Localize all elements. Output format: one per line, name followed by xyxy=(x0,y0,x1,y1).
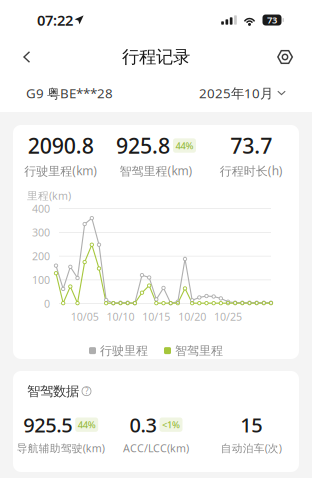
button[interactable]: G9 粤BE***28 xyxy=(26,84,113,102)
staticText: 0 xyxy=(44,296,50,311)
staticText: 2090.8 xyxy=(28,131,94,160)
button[interactable]: 2025年10月 xyxy=(199,84,286,102)
staticText: 2025年10月 xyxy=(199,84,273,102)
staticText: 400 xyxy=(32,201,50,216)
staticText: 300 xyxy=(32,225,50,239)
button[interactable]: 设置 xyxy=(265,40,305,74)
staticText: <1% xyxy=(162,418,180,431)
staticText: 100 xyxy=(32,273,50,287)
staticText: 行驶里程(km) xyxy=(24,163,97,179)
staticText: 自动泊车(次) xyxy=(221,441,282,455)
staticText: 0.3 xyxy=(129,411,156,438)
staticText: 73 xyxy=(267,14,277,26)
staticText: 10/15 xyxy=(142,309,170,324)
staticText: 44% xyxy=(78,418,96,431)
staticText: 里程(km) xyxy=(27,188,71,203)
staticText: 智驾数据 xyxy=(27,383,79,399)
staticText: 200 xyxy=(32,249,50,263)
staticText: 44% xyxy=(175,139,193,152)
staticText: 智驾里程(km) xyxy=(119,163,192,179)
staticText: 导航辅助驾驶(km) xyxy=(17,441,105,455)
staticText: ACC/LCC(km) xyxy=(123,441,189,455)
staticText: ? xyxy=(85,386,88,396)
button[interactable]: 返回 xyxy=(7,40,47,74)
staticText: G9 粤BE***28 xyxy=(26,84,113,102)
staticText: 10/10 xyxy=(106,309,134,324)
staticText: 925.5 xyxy=(23,411,72,438)
staticText: 行程时长(h) xyxy=(220,163,283,179)
staticText: 15 xyxy=(240,411,262,438)
staticText: 行程记录 xyxy=(122,46,190,68)
staticText: 10/20 xyxy=(178,309,206,324)
staticText: 925.8 xyxy=(116,131,170,160)
staticText: 10/05 xyxy=(71,309,99,324)
staticText: 07:22 xyxy=(37,10,73,30)
staticText: 73.7 xyxy=(230,131,272,160)
staticText: 行驶里程 xyxy=(100,343,148,358)
staticText: 智驾里程 xyxy=(175,343,223,358)
staticText: 10/25 xyxy=(214,309,242,324)
